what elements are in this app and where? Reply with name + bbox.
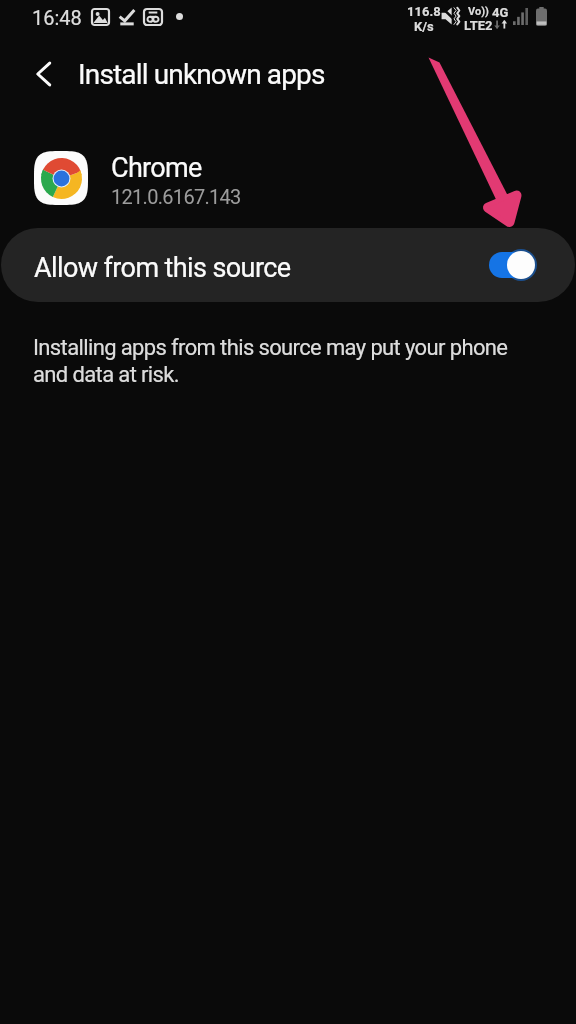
staticText: Install unknown apps	[78, 58, 325, 91]
staticText: LTE2	[464, 18, 493, 33]
button[interactable]: Navigate up	[22, 52, 66, 96]
button[interactable]: Allow from this source	[1, 228, 575, 302]
staticText: Installing apps from this source may put…	[33, 335, 533, 388]
button[interactable]: Allow from this source, on	[478, 228, 548, 302]
staticText: K/s	[414, 19, 434, 34]
staticText: 4G	[492, 5, 509, 20]
staticText: Allow from this source	[34, 252, 291, 284]
staticText: 16:48	[32, 6, 82, 29]
staticText: 116.8	[407, 4, 441, 19]
staticText: Vo))	[468, 5, 489, 18]
staticText: 121.0.6167.143	[111, 185, 241, 208]
staticText: Chrome	[111, 152, 202, 184]
